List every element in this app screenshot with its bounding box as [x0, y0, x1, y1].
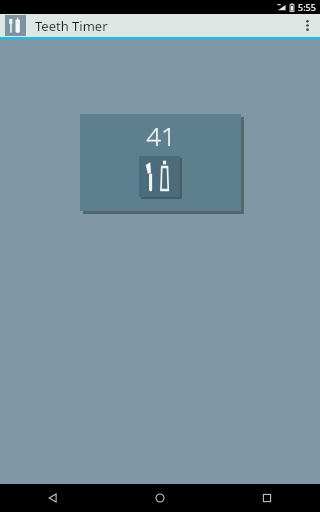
staticText: Teeth Timer	[35, 17, 108, 35]
button[interactable]: Teeth Timer app icon	[5, 15, 26, 36]
button[interactable]: Recent apps	[213, 484, 320, 512]
button[interactable]: Home	[106, 484, 213, 512]
button[interactable]: More options	[294, 14, 320, 37]
button[interactable]: Back	[0, 484, 106, 512]
button[interactable]: 41	[80, 114, 241, 211]
staticText: 5:55	[298, 1, 316, 13]
staticText: 41	[146, 118, 176, 153]
